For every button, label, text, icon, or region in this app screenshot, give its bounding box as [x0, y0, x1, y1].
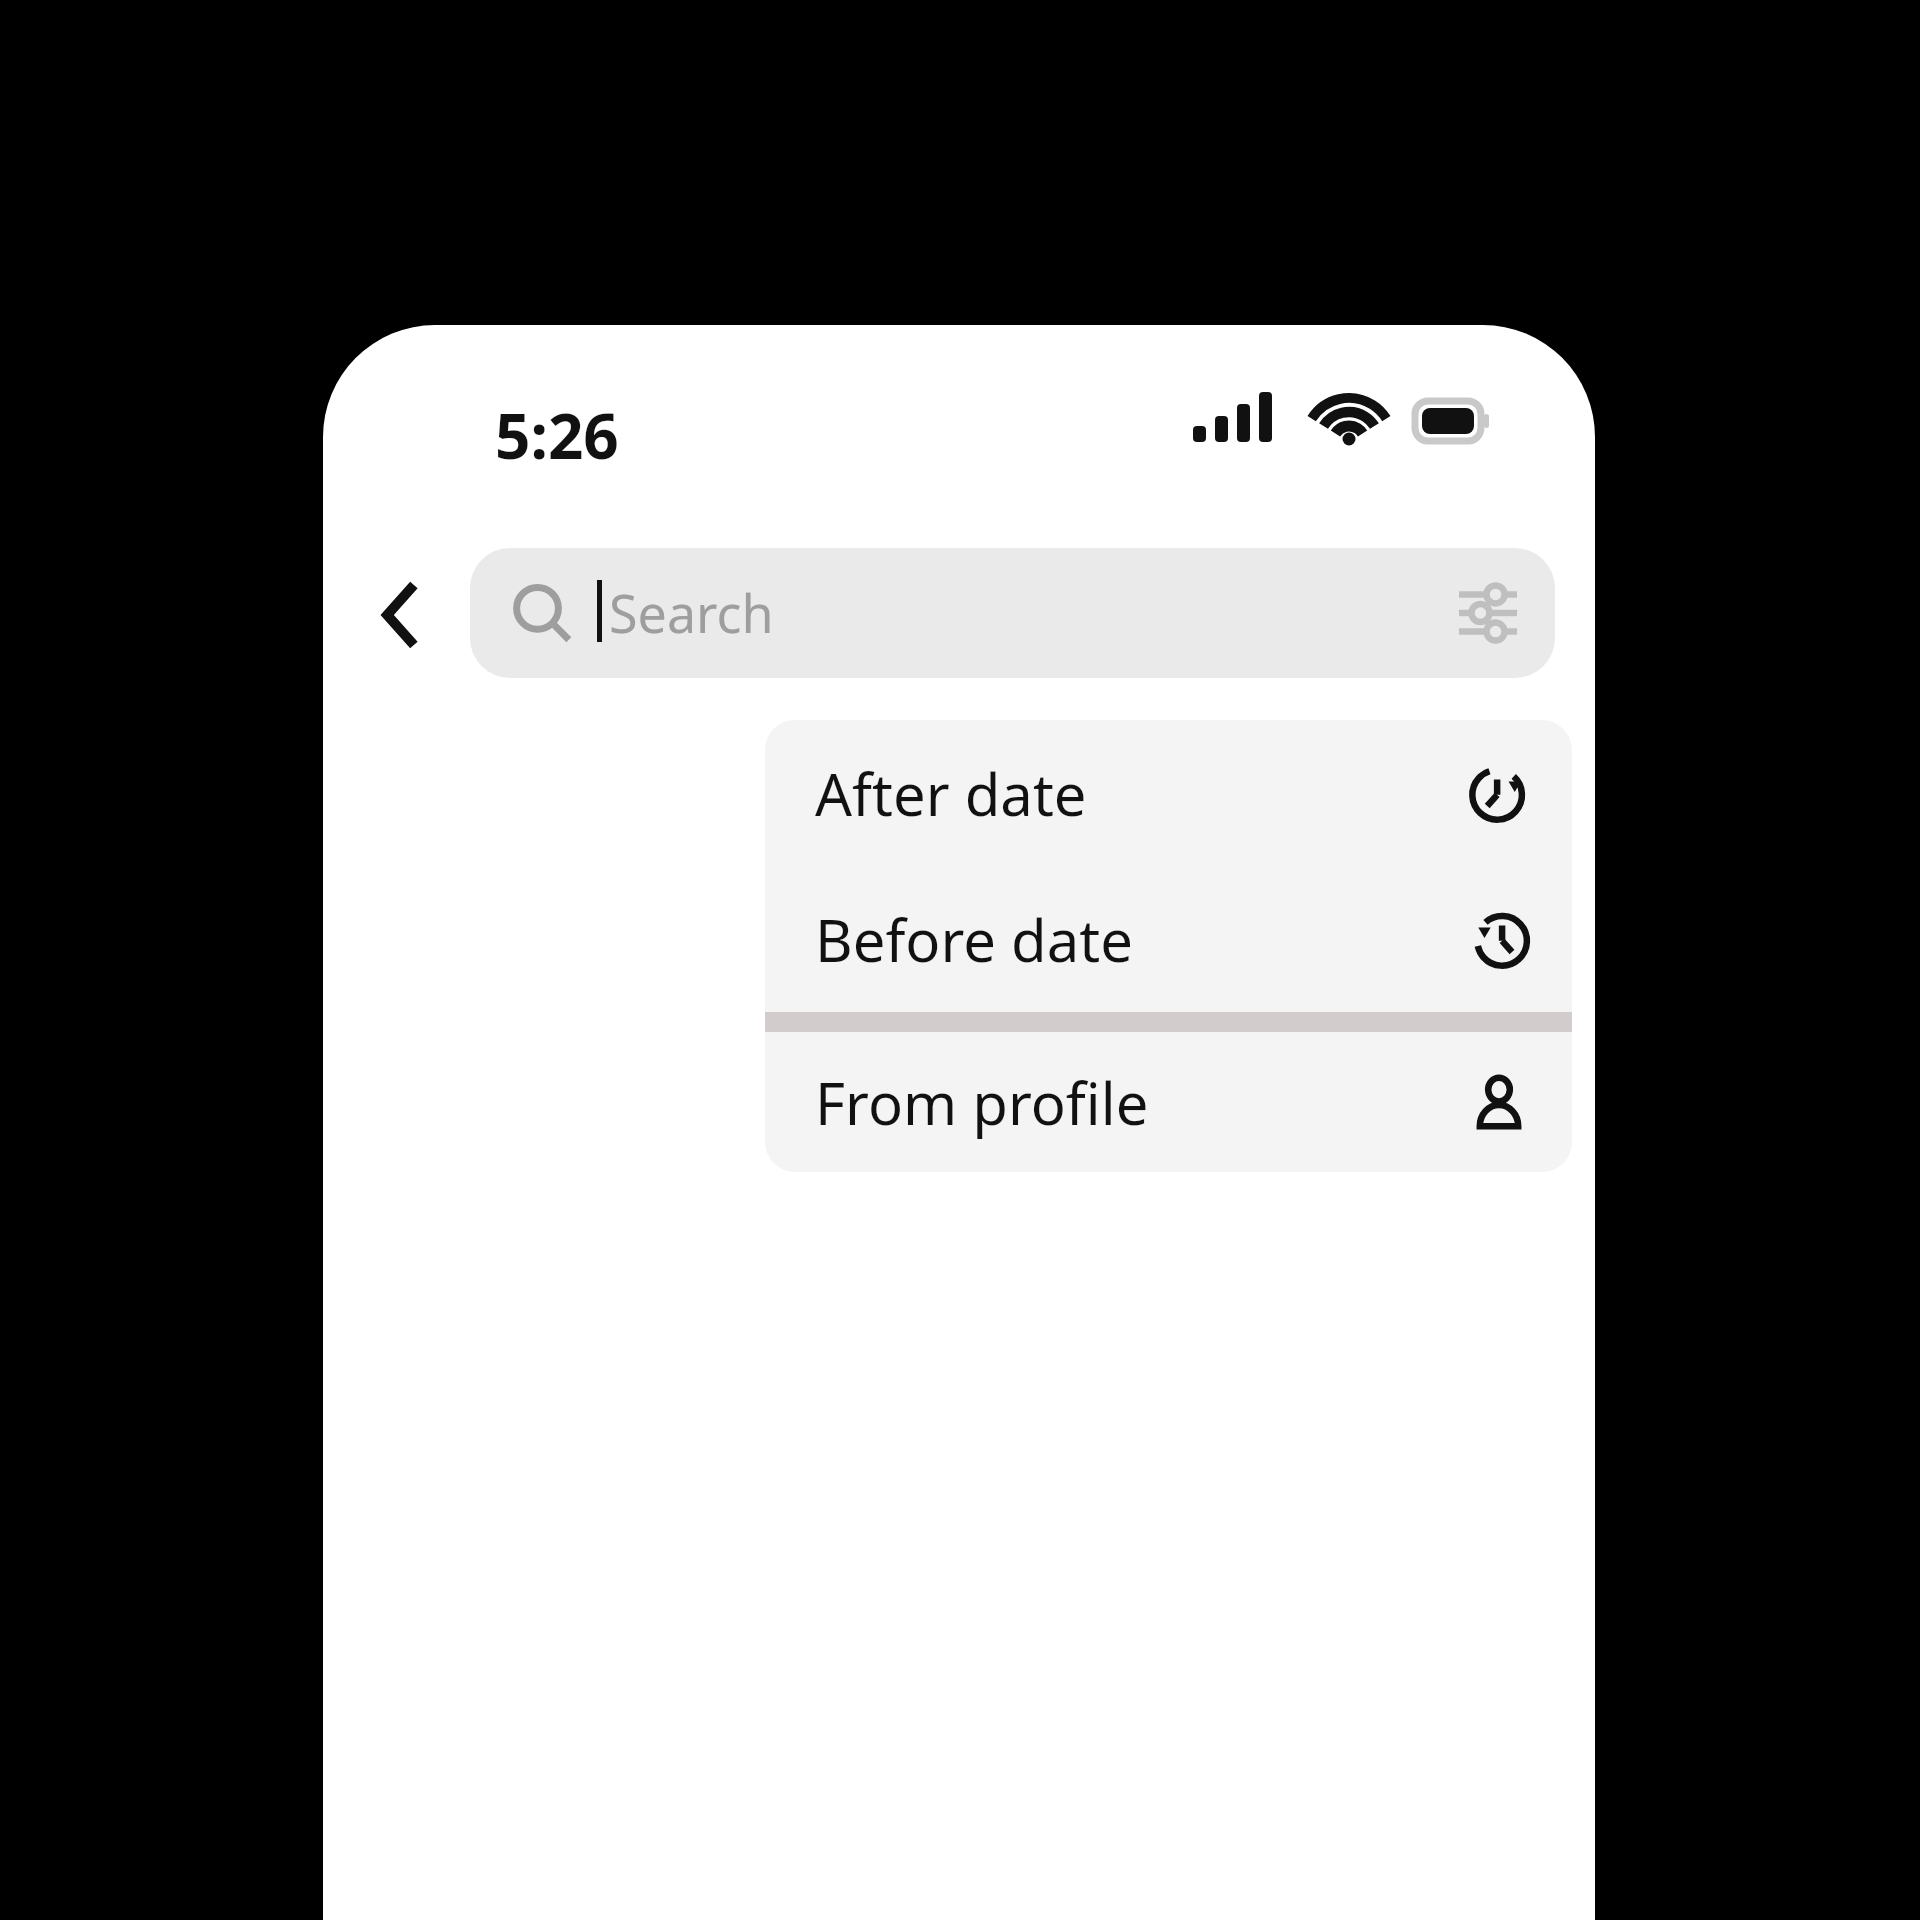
button[interactable]: Before date — [765, 866, 1572, 1012]
staticText: 5:26 — [495, 393, 619, 477]
button[interactable]: After date — [765, 720, 1572, 866]
button[interactable]: Search — [470, 548, 1555, 678]
staticText: From profile — [815, 1063, 1149, 1142]
staticText: Search — [609, 577, 774, 648]
button[interactable]: Back — [355, 557, 447, 673]
button[interactable]: From profile — [765, 1032, 1572, 1172]
button[interactable]: Filters — [1447, 572, 1529, 654]
staticText: After date — [815, 754, 1087, 833]
staticText: Before date — [815, 900, 1133, 979]
